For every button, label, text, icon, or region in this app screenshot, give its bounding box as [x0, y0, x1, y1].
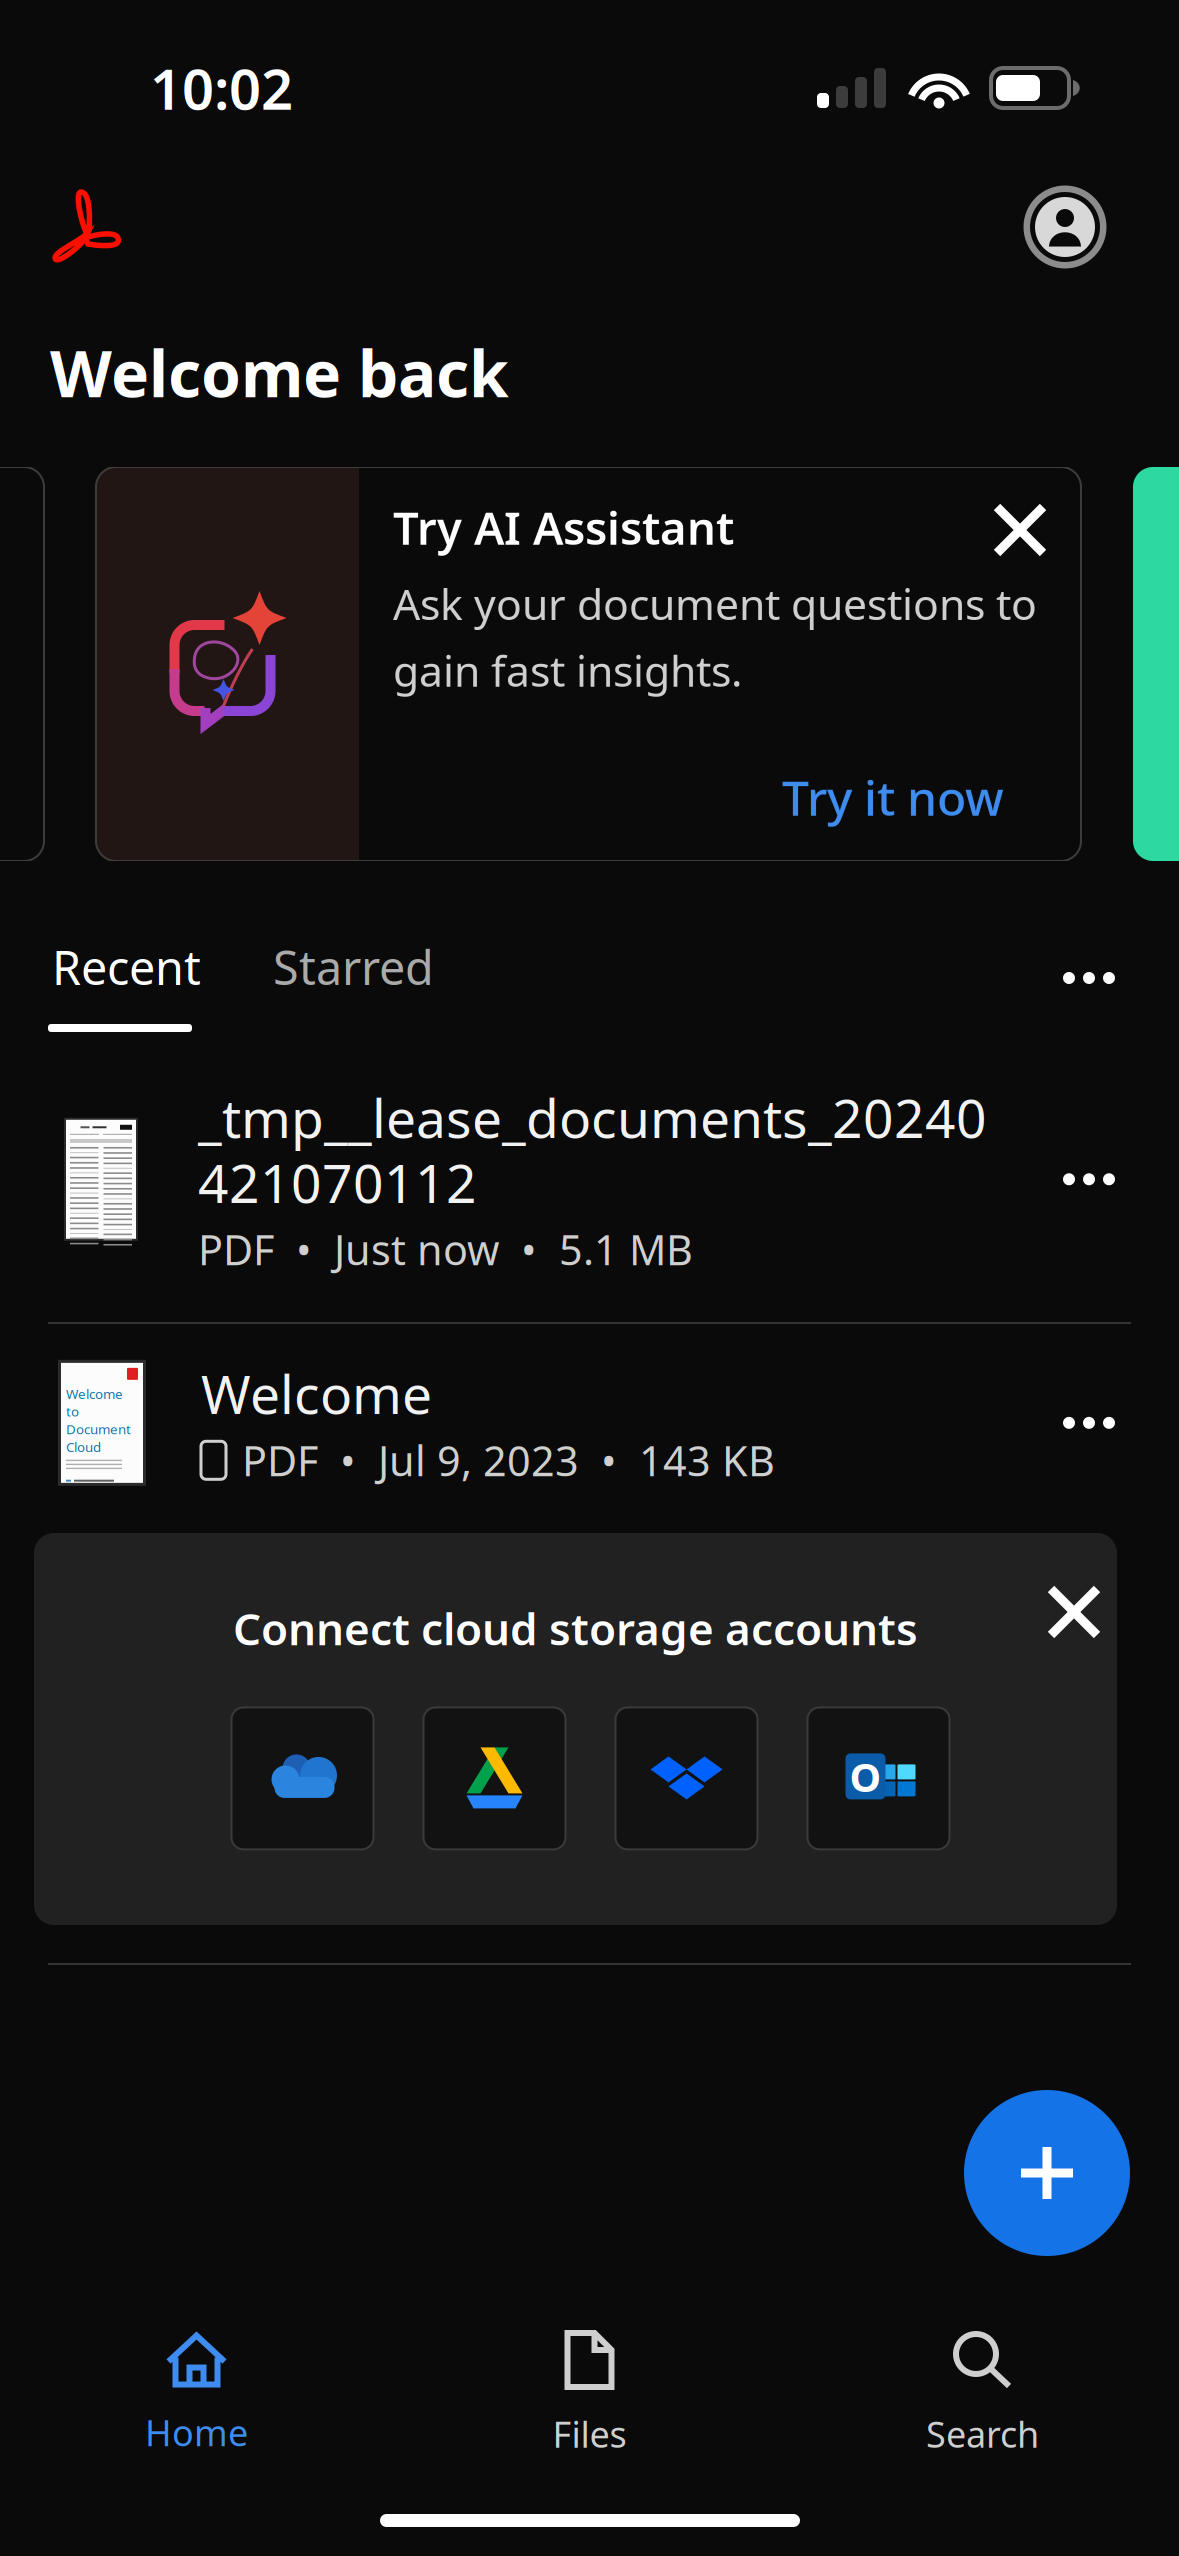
button[interactable]: More options — [1051, 1143, 1147, 1215]
button[interactable]: Dismiss — [977, 487, 1063, 573]
staticText: Connect cloud storage accounts — [233, 1599, 918, 1657]
button[interactable]: More options — [1051, 1387, 1141, 1459]
staticText: 421070112 — [198, 1147, 477, 1218]
staticText: PDF • Jul 9, 2023 • 143 KB — [242, 1433, 775, 1488]
button[interactable]: Dismiss — [1031, 1569, 1117, 1655]
button[interactable]: OneDrive — [231, 1707, 373, 1849]
staticText: Files — [552, 2410, 626, 2458]
staticText: PDF • Just now • 5.1 MB — [198, 1222, 693, 1276]
staticText: Document Cloud — [66, 1420, 131, 1456]
staticText: Recent — [52, 936, 201, 998]
staticText: Search — [926, 2410, 1039, 2458]
button[interactable]: Home — [0, 2331, 393, 2456]
staticText: Welcome to — [66, 1385, 123, 1420]
button[interactable]: Files — [393, 2330, 786, 2458]
button[interactable]: Google Drive — [423, 1707, 565, 1849]
button[interactable]: Dropbox — [615, 1707, 757, 1849]
staticText: Starred — [273, 936, 434, 998]
button[interactable]: _tmp__lease_documents_20240 — [64, 1082, 1147, 1276]
button[interactable]: Welcome to — [58, 1358, 1141, 1488]
staticText: 10:02 — [150, 51, 293, 125]
staticText: Welcome — [201, 1358, 432, 1429]
staticText: gain fast insights. — [393, 642, 742, 699]
button[interactable]: Create — [964, 2090, 1130, 2256]
button[interactable]: Search — [786, 2330, 1179, 2458]
button[interactable]: Account — [1022, 184, 1108, 270]
staticText: O — [849, 1750, 881, 1803]
button[interactable]: More — [1063, 972, 1115, 984]
staticText: Home — [145, 2408, 248, 2456]
staticText: Try it now — [782, 765, 1004, 829]
button[interactable]: Recent — [52, 936, 201, 998]
button[interactable]: Starred — [273, 936, 434, 998]
staticText: _tmp__lease_documents_20240 — [198, 1082, 987, 1153]
staticText: Ask your document questions to — [393, 575, 1037, 632]
staticText: Try AI Assistant — [393, 497, 734, 557]
button[interactable]: Try AI Assistant — [96, 467, 1081, 861]
button[interactable]: Outlook — [807, 1707, 949, 1849]
staticText: Welcome back — [50, 330, 509, 415]
